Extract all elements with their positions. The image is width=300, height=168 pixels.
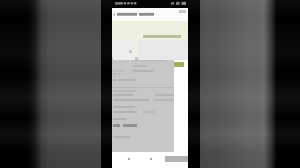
- button[interactable]: Back: [124, 154, 133, 163]
- button[interactable]: Recents: [167, 154, 176, 163]
- button[interactable]: [113, 40, 135, 60]
- button[interactable]: Back: [112, 10, 156, 19]
- button[interactable]: Home: [146, 154, 155, 163]
- button[interactable]: Далее: [174, 62, 184, 67]
